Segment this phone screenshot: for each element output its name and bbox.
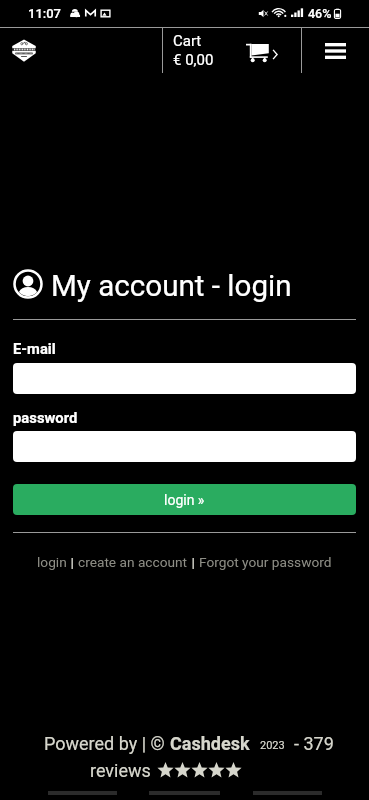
button[interactable]: create an account xyxy=(78,554,188,570)
button[interactable]: Cart xyxy=(162,28,301,73)
button[interactable]: Home xyxy=(12,39,36,62)
staticText: login » xyxy=(164,492,205,508)
staticText: 2023 xyxy=(260,739,285,752)
button[interactable]: Menu xyxy=(302,28,369,73)
staticText: My account - login xyxy=(51,269,292,304)
staticText: E-mail xyxy=(13,340,56,357)
button[interactable]: Forgot your password xyxy=(199,554,332,570)
button[interactable]: login xyxy=(37,554,67,570)
button[interactable]: Password input xyxy=(13,431,356,462)
staticText: Powered by | © xyxy=(44,733,170,754)
staticText: 11:07 xyxy=(28,6,62,21)
button[interactable]: login » xyxy=(13,484,356,515)
staticText: | xyxy=(188,554,199,570)
staticText: Cart xyxy=(173,32,202,50)
staticText: 46% xyxy=(308,6,332,21)
staticText: reviews xyxy=(90,760,151,781)
staticText: - 379 xyxy=(294,733,334,754)
button[interactable]: E-mail input xyxy=(13,363,356,394)
staticText: Cashdesk xyxy=(170,733,250,754)
staticText: password xyxy=(13,409,78,426)
staticText: € 0,00 xyxy=(173,51,214,69)
staticText: | xyxy=(67,554,78,570)
